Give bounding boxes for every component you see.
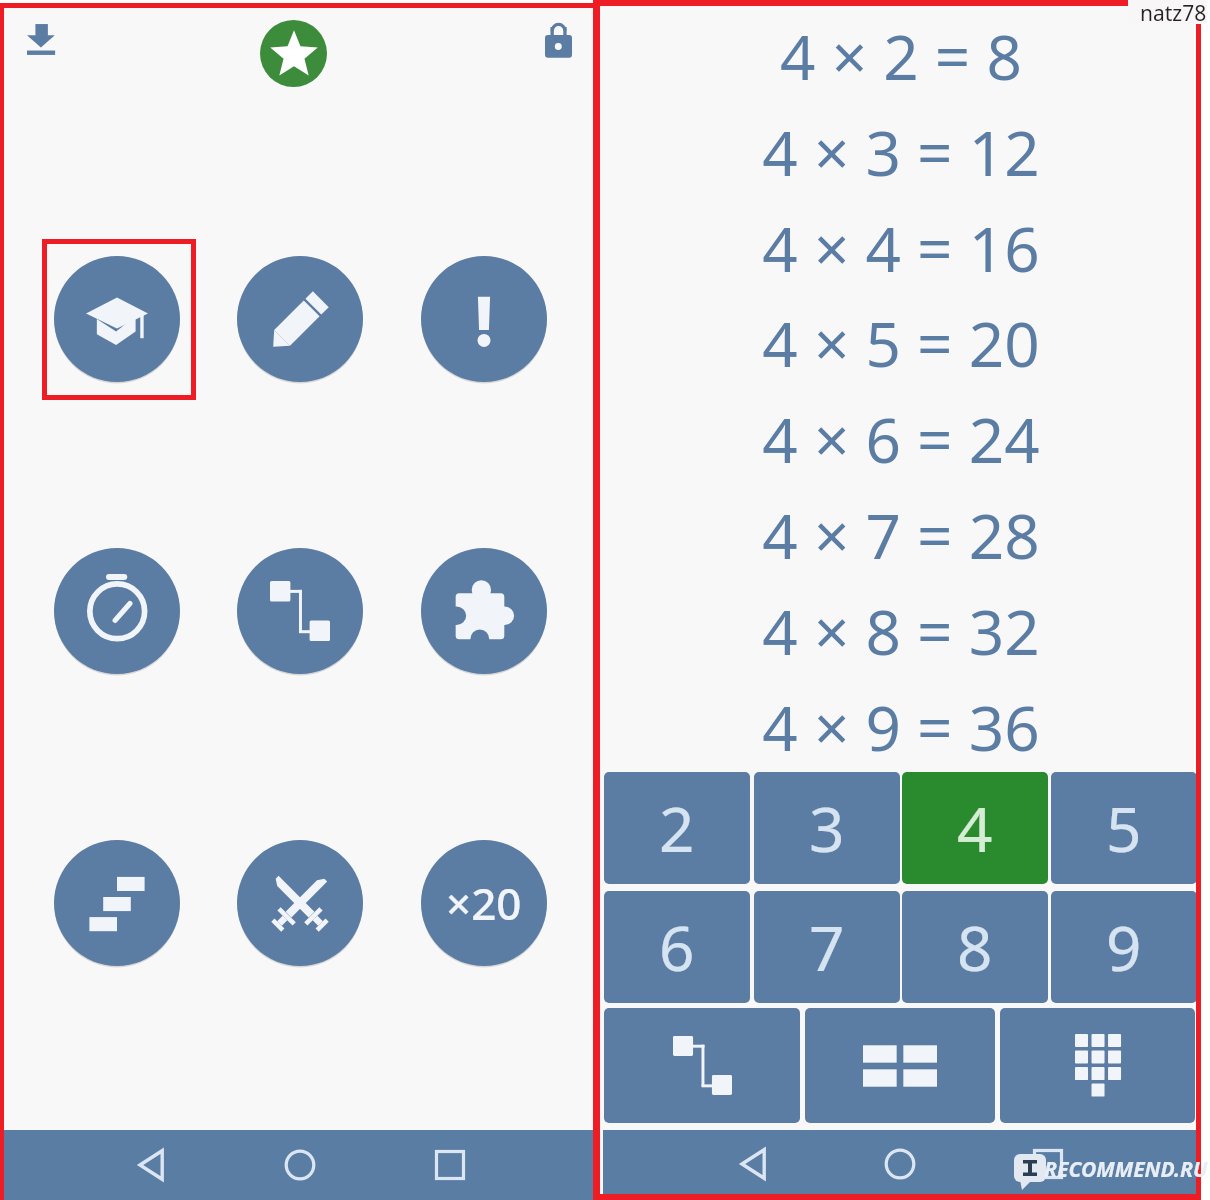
button[interactable]: 6	[604, 891, 750, 1003]
staticText: 4 × 5 = 20	[762, 301, 1040, 385]
button[interactable]: Download	[17, 14, 65, 62]
button[interactable]: Back	[729, 1142, 773, 1186]
button[interactable]: 3	[754, 772, 900, 884]
button[interactable]: Keypad	[1000, 1008, 1195, 1123]
button[interactable]: Match	[604, 1008, 800, 1123]
button[interactable]: Learn	[54, 256, 180, 382]
staticText: ×20	[446, 873, 522, 933]
staticText: RECOMMEND.RU	[1044, 1155, 1208, 1184]
button[interactable]: Recents	[1026, 1142, 1070, 1186]
button[interactable]: Home	[878, 1142, 922, 1186]
button[interactable]: 2	[604, 772, 750, 884]
button[interactable]: Timed	[54, 548, 180, 674]
staticText: 4	[957, 786, 993, 870]
button[interactable]: 8	[902, 891, 1048, 1003]
button[interactable]: Grid	[805, 1008, 995, 1123]
button[interactable]: Lock	[534, 15, 582, 63]
staticText: 8	[957, 905, 993, 989]
button[interactable]: Back	[127, 1143, 171, 1187]
staticText: 4 × 8 = 32	[762, 589, 1040, 673]
button[interactable]: Duel	[237, 840, 363, 966]
button[interactable]: 7	[754, 891, 900, 1003]
staticText: 3	[809, 786, 845, 870]
button[interactable]: Favorite	[260, 20, 327, 87]
button[interactable]: Recents	[428, 1143, 472, 1187]
button[interactable]: 9	[1051, 891, 1197, 1003]
button[interactable]: 4	[902, 772, 1048, 884]
button[interactable]: Match	[237, 548, 363, 674]
button[interactable]: Home	[278, 1143, 322, 1187]
staticText: 4 × 3 = 12	[762, 110, 1040, 194]
staticText: 9	[1106, 905, 1142, 989]
button[interactable]: Test	[421, 256, 547, 382]
button[interactable]: 5	[1051, 772, 1197, 884]
button[interactable]: Puzzle	[421, 548, 547, 674]
button[interactable]: Levels	[54, 840, 180, 966]
staticText: 6	[659, 905, 695, 989]
staticText: 2	[659, 786, 695, 870]
button[interactable]: Times 20	[421, 840, 547, 966]
button[interactable]: Practice	[237, 256, 363, 382]
staticText: 4 × 2 = 8	[780, 14, 1022, 98]
staticText: 4 × 9 = 36	[762, 685, 1040, 769]
staticText: 5	[1106, 786, 1142, 870]
staticText: natz78	[1140, 0, 1207, 24]
staticText: 4 × 7 = 28	[762, 493, 1040, 577]
staticText: 4 × 4 = 16	[762, 206, 1040, 290]
staticText: 4 × 6 = 24	[762, 397, 1040, 481]
staticText: 7	[809, 905, 845, 989]
